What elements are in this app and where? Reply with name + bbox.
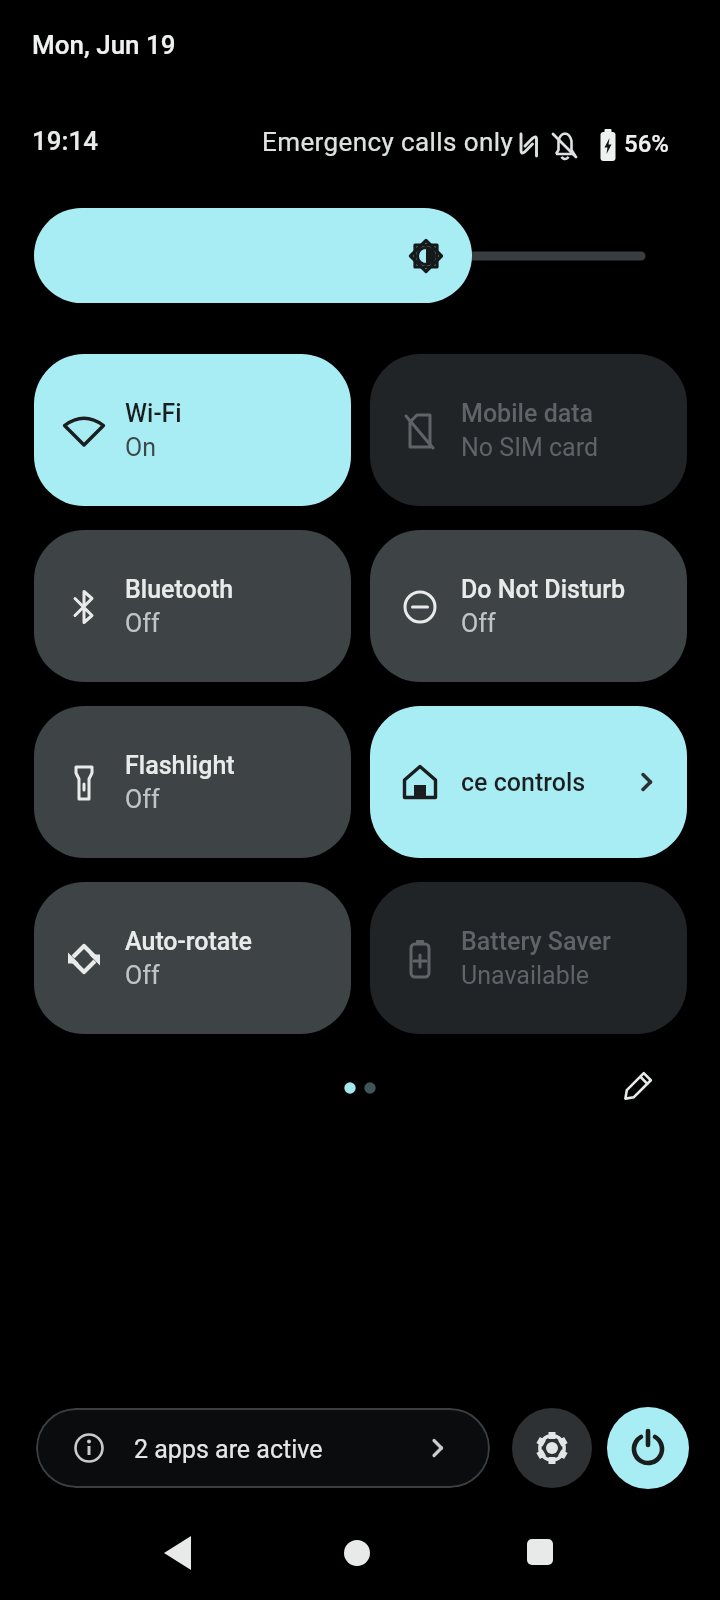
button[interactable] (36, 1408, 490, 1488)
staticText: 19:14 (32, 126, 99, 156)
staticText: Off (125, 785, 160, 814)
staticText: Off (125, 961, 160, 990)
staticText: Emergency calls only (262, 127, 514, 157)
staticText: 56% (624, 130, 669, 158)
button[interactable] (527, 1539, 553, 1565)
staticText: Auto-rotate (125, 927, 252, 956)
staticText: Battery Saver (461, 927, 611, 956)
button[interactable]: Bluetooth (34, 530, 351, 682)
staticText: No SIM card (461, 433, 598, 462)
staticText: Mon, Jun 19 (32, 30, 176, 60)
button[interactable] (34, 208, 472, 303)
staticText: Off (125, 609, 160, 638)
button[interactable]: Battery Saver (370, 882, 687, 1034)
button[interactable]: Mobile data (370, 354, 687, 506)
button[interactable]: Auto-rotate (34, 882, 351, 1034)
button[interactable] (512, 1408, 592, 1488)
button[interactable] (616, 1068, 656, 1108)
button[interactable]: Wi-Fi (34, 354, 351, 506)
staticText: On (125, 433, 157, 462)
staticText: Do Not Disturb (461, 575, 626, 604)
button[interactable]: ce controls (370, 706, 687, 858)
button[interactable]: Do Not Disturb (370, 530, 687, 682)
staticText: Wi-Fi (125, 399, 182, 428)
staticText: Off (461, 609, 496, 638)
staticText: ce controls (461, 768, 586, 797)
button[interactable] (607, 1407, 689, 1489)
staticText: Unavailable (461, 961, 590, 990)
button[interactable]: Flashlight (34, 706, 351, 858)
staticText: Mobile data (461, 399, 594, 428)
staticText: 2 apps are active (134, 1435, 323, 1464)
staticText: Bluetooth (125, 575, 234, 604)
staticText: Flashlight (125, 751, 235, 780)
button[interactable] (158, 1533, 198, 1573)
button[interactable] (344, 1540, 370, 1566)
